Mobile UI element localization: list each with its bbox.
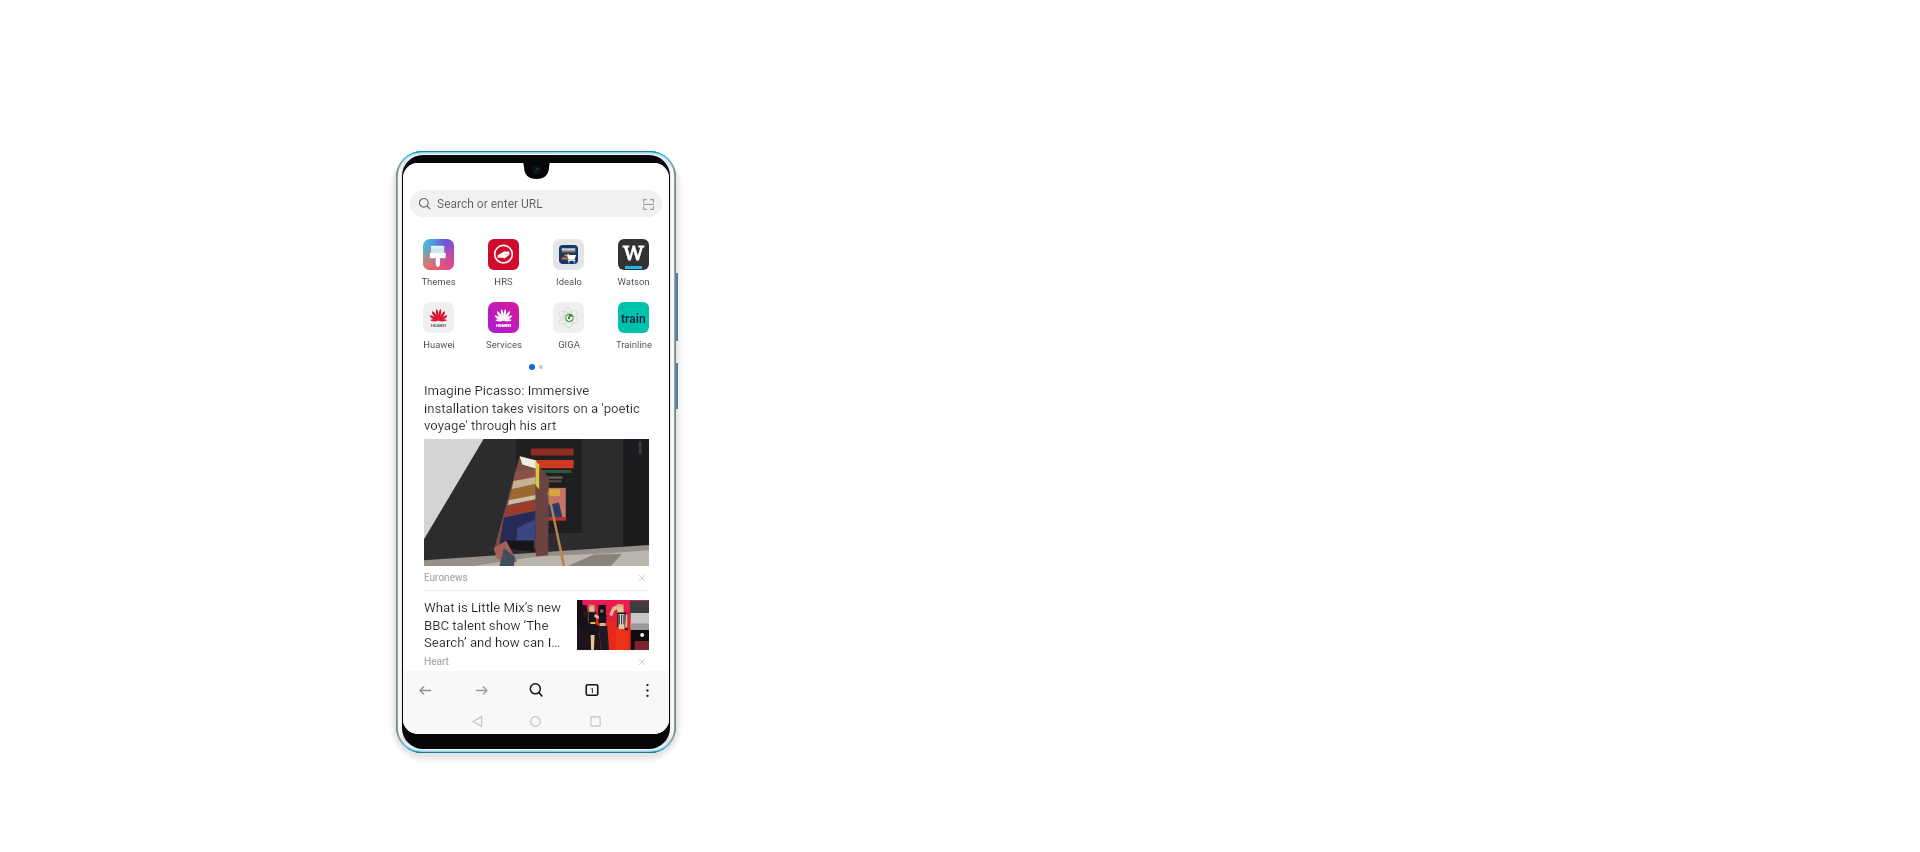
staticText: train xyxy=(621,312,646,326)
staticText: Euronews xyxy=(424,572,468,584)
staticText: W xyxy=(623,239,644,266)
button[interactable]: W xyxy=(601,239,666,288)
button[interactable]: HRS xyxy=(471,239,536,288)
button[interactable]: HUAWEI xyxy=(406,302,471,351)
staticText: What is Little Mix’s new BBC talent show… xyxy=(424,600,569,650)
button[interactable]: Recents xyxy=(573,709,617,734)
button[interactable]: train xyxy=(601,302,666,351)
button[interactable]: Back xyxy=(455,709,499,734)
button[interactable]: Dismiss xyxy=(635,655,649,669)
staticText: Huawei xyxy=(423,339,455,350)
button[interactable]: Dismiss xyxy=(635,571,649,585)
button[interactable]: Search or enter URL xyxy=(410,190,662,217)
staticText: Idealo xyxy=(556,276,582,287)
staticText: Themes xyxy=(421,276,456,287)
button[interactable]: Back xyxy=(403,671,449,709)
staticText: GIGA xyxy=(558,339,580,350)
button[interactable]: Idealo xyxy=(536,239,601,288)
button[interactable]: More options xyxy=(623,671,669,709)
button[interactable]: Scan QR code xyxy=(641,197,655,211)
staticText: Imagine Picasso: Immersive installation … xyxy=(424,383,650,433)
staticText: Heart xyxy=(424,656,449,668)
button[interactable]: Home xyxy=(513,709,557,734)
button[interactable]: Forward xyxy=(457,671,505,709)
button[interactable]: What is Little Mix’s new BBC talent show… xyxy=(424,600,649,650)
staticText: 1 xyxy=(590,686,595,695)
staticText: Watson xyxy=(617,276,650,287)
staticText: HRS xyxy=(494,276,513,287)
button[interactable]: Search xyxy=(512,671,560,709)
staticText: Trainline xyxy=(616,339,652,350)
staticText: Services xyxy=(486,339,522,350)
staticText: HUAWEI xyxy=(496,323,511,328)
staticText: Search or enter URL xyxy=(437,197,543,211)
button[interactable]: Imagine Picasso: Immersive installation … xyxy=(403,383,669,566)
button[interactable]: Themes xyxy=(406,239,471,288)
button[interactable]: Tabs xyxy=(568,671,616,709)
staticText: HUAWEI xyxy=(431,323,446,328)
button[interactable]: HUAWEI xyxy=(471,302,536,351)
button[interactable]: GIGA xyxy=(536,302,601,351)
